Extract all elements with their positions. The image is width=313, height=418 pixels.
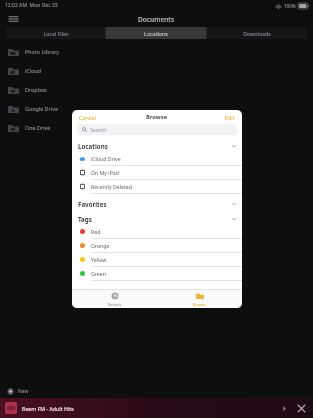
- button[interactable]: Cancel: [79, 114, 96, 121]
- staticText: Beem FM - Adult Hits: [22, 405, 74, 412]
- staticText: Dropbox: [25, 86, 47, 93]
- button[interactable]: New: [0, 384, 313, 398]
- button[interactable]: Local Files: [6, 27, 105, 39]
- staticText: Browse: [146, 113, 168, 121]
- staticText: Google Drive: [25, 105, 58, 112]
- staticText: iCloud Drive: [91, 155, 121, 162]
- button[interactable]: On My iPad: [72, 166, 242, 179]
- button[interactable]: Yellow: [72, 253, 242, 266]
- staticText: Recently Deleted: [91, 183, 132, 190]
- staticText: Recents: [108, 302, 122, 307]
- button[interactable]: Red: [72, 225, 242, 238]
- button[interactable]: Google Drive: [0, 99, 313, 118]
- staticText: Photo Library: [25, 48, 60, 55]
- staticText: Documents: [138, 15, 175, 24]
- button[interactable]: iCloud Drive: [72, 152, 242, 165]
- staticText: Tags: [78, 215, 92, 223]
- staticText: Search: [90, 126, 107, 133]
- button[interactable]: Downloads: [207, 27, 307, 39]
- staticText: Yellow: [91, 256, 107, 263]
- staticText: Locations: [78, 142, 108, 150]
- button[interactable]: Locations: [72, 139, 242, 152]
- button[interactable]: Beem FM - Adult Hits: [0, 398, 313, 418]
- staticText: Browse: [193, 302, 206, 307]
- button[interactable]: Orange: [72, 239, 242, 252]
- button[interactable]: Dropbox: [0, 80, 313, 99]
- button[interactable]: Edit: [225, 114, 235, 121]
- button[interactable]: Play: [278, 402, 290, 414]
- staticText: iCloud: [25, 67, 42, 74]
- staticText: One Drive: [25, 124, 51, 131]
- staticText: Downloads: [243, 30, 271, 37]
- button[interactable]: Menu: [7, 13, 20, 26]
- button[interactable]: Close: [294, 401, 308, 415]
- button[interactable]: Recents: [72, 290, 157, 308]
- button[interactable]: Recently Deleted: [72, 180, 242, 193]
- staticText: Orange: [91, 242, 110, 249]
- button[interactable]: Locations: [106, 27, 206, 39]
- staticText: 100%: [284, 3, 296, 9]
- staticText: Local Files: [43, 30, 69, 37]
- button[interactable]: Tags: [72, 212, 242, 225]
- button[interactable]: Browse: [157, 290, 242, 308]
- staticText: Locations: [144, 30, 168, 37]
- button[interactable]: Search: [77, 124, 237, 135]
- staticText: New: [18, 388, 29, 395]
- button[interactable]: iCloud: [0, 61, 313, 80]
- button[interactable]: Favorites: [72, 197, 242, 210]
- button[interactable]: Green: [72, 267, 242, 280]
- staticText: Red: [91, 228, 101, 235]
- staticText: 12:02 AM Mon Dec 23: [5, 2, 58, 9]
- button[interactable]: One Drive: [0, 118, 313, 137]
- button[interactable]: Photo Library: [0, 42, 313, 61]
- staticText: On My iPad: [91, 169, 119, 176]
- staticText: Favorites: [78, 200, 107, 208]
- staticText: Green: [91, 270, 106, 277]
